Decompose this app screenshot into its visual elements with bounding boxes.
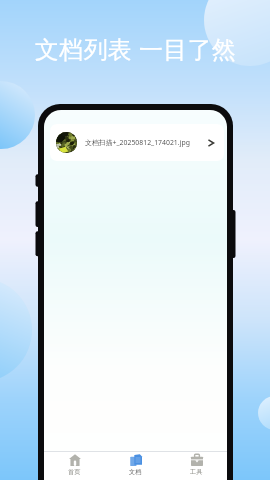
button[interactable]: 文档 [105, 452, 166, 480]
button[interactable]: 文档扫描+_20250812_174021.jpg [50, 124, 224, 161]
staticText: 首页 [68, 468, 81, 476]
staticText: 文档列表 [35, 35, 132, 65]
button[interactable]: 首页 [44, 452, 105, 480]
staticText: 工具 [190, 468, 203, 476]
staticText: 文档 [129, 468, 142, 476]
button[interactable]: 工具 [166, 452, 227, 480]
staticText: 文档扫描+_20250812_174021.jpg [85, 138, 190, 147]
staticText: 一目了然 [139, 35, 236, 65]
